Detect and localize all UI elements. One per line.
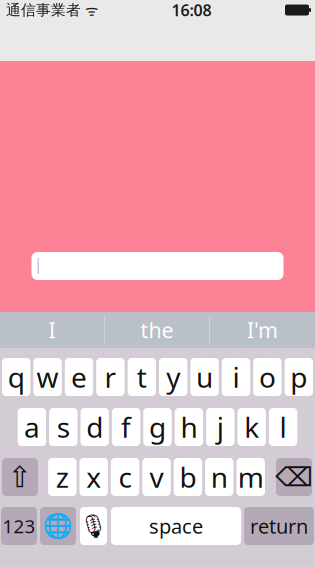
staticText: w [37,358,59,396]
staticText: p [290,358,307,396]
button[interactable]: o [253,358,282,396]
staticText: I [48,316,55,344]
staticText: ᯤ [81,0,98,20]
button[interactable]: p [285,358,313,396]
staticText: 🌐 [43,512,73,540]
button[interactable]: i [222,358,250,396]
button[interactable]: h [175,408,203,446]
staticText: I'm [247,316,278,344]
button[interactable]: n [205,458,233,496]
button[interactable]: t [128,358,156,396]
staticText: c [119,458,132,496]
button[interactable]: Shift [2,458,38,496]
staticText: e [71,358,87,396]
staticText: r [104,358,116,396]
button[interactable]: k [237,408,266,446]
staticText: ⌫ [275,462,313,492]
button[interactable]: l [269,408,297,446]
staticText: return [250,513,308,539]
button[interactable]: f [112,408,140,446]
button[interactable]: m [236,458,265,496]
staticText: q [8,358,25,396]
staticText: y [166,358,180,396]
staticText: n [211,458,228,496]
staticText: 16:08 [171,0,211,21]
staticText: l [280,408,287,446]
staticText: m [238,458,264,496]
staticText: space [149,513,203,539]
button[interactable]: q [2,358,30,396]
staticText: o [259,358,276,396]
button[interactable]: b [174,458,202,496]
staticText: d [86,408,103,446]
button[interactable]: w [33,358,62,396]
button[interactable]: r [96,358,125,396]
button[interactable]: d [80,408,109,446]
staticText: 🎙 [79,513,108,539]
staticText: b [179,458,196,496]
button[interactable]: I [0,312,104,348]
button[interactable]: z [48,458,76,496]
staticText: i [232,358,239,396]
staticText: the [140,316,173,344]
staticText: f [121,408,131,446]
staticText: k [244,408,259,446]
button[interactable]: y [159,358,187,396]
button[interactable]: return [244,507,314,545]
staticText: s [57,408,70,446]
button[interactable]: g [143,408,172,446]
staticText: z [56,458,69,496]
button[interactable]: the [105,312,209,348]
staticText: a [24,408,40,446]
staticText: 通信事業者 [6,1,81,19]
button[interactable]: u [190,358,219,396]
button[interactable]: Dictate [79,507,108,545]
button[interactable]: e [65,358,93,396]
button[interactable]: j [206,408,234,446]
button[interactable]: x [79,458,108,496]
staticText: j [217,408,224,446]
button[interactable]: a [18,408,46,446]
button[interactable]: c [111,458,139,496]
staticText: x [86,458,101,496]
button[interactable]: I'm [210,312,315,348]
button[interactable]: v [142,458,171,496]
button[interactable]: Next keyboard [40,507,76,545]
staticText: t [137,358,147,396]
button[interactable]: Delete [275,458,313,496]
staticText: g [149,408,166,446]
staticText: v [149,458,163,496]
staticText: 123 [2,514,35,538]
staticText: h [180,408,197,446]
button[interactable]: space [111,507,241,545]
staticText: u [196,358,213,396]
button[interactable]: s [49,408,77,446]
staticText: ⇧ [7,460,32,494]
button[interactable]: 123 [1,507,37,545]
